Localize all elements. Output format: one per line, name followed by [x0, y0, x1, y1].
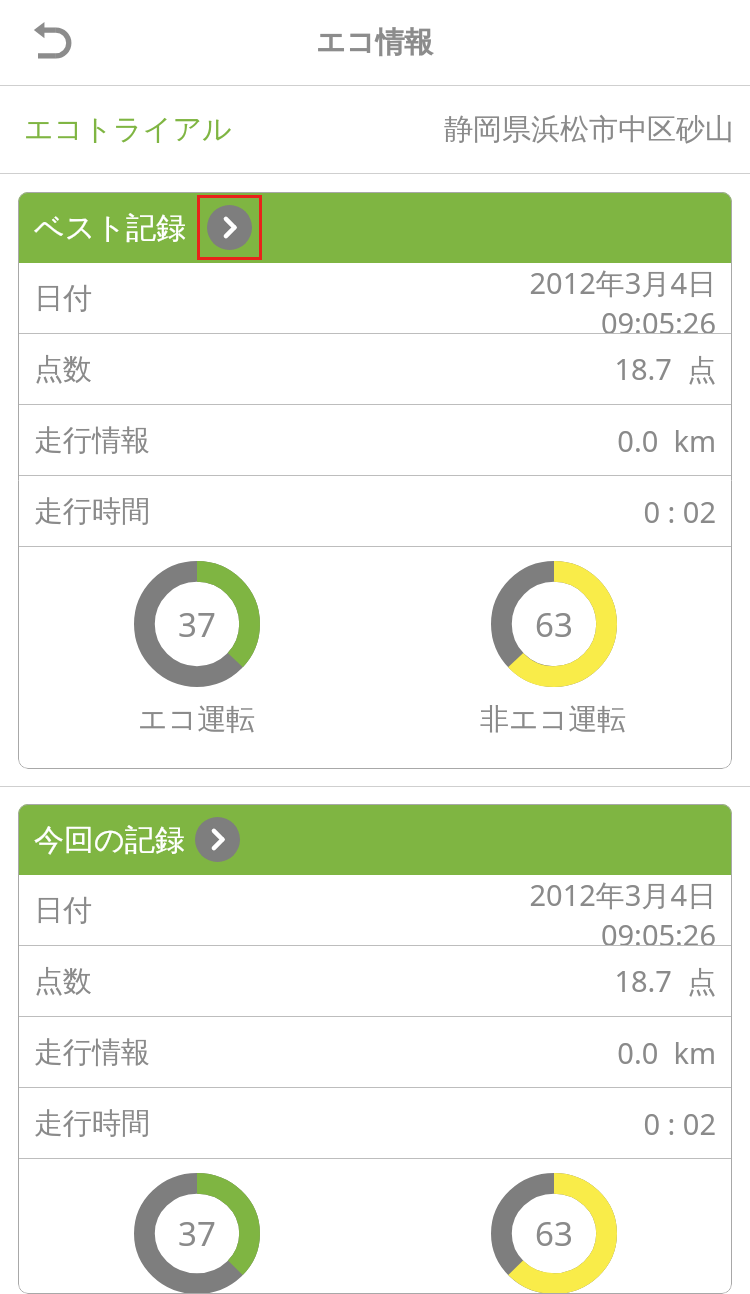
staticText: 走行時間: [34, 1105, 150, 1142]
staticText: 静岡県浜松市中区砂山: [444, 111, 734, 148]
staticText: エコ情報: [316, 24, 434, 61]
staticText: 09:05:26: [600, 915, 716, 945]
button[interactable]: Back: [22, 10, 88, 76]
button[interactable]: 日付: [18, 875, 732, 945]
button[interactable]: 点数: [18, 334, 732, 404]
staticText: 点数: [34, 351, 92, 388]
button[interactable]: 走行情報: [18, 1017, 732, 1087]
button[interactable]: 点数: [18, 946, 732, 1016]
staticText: エコ運転: [138, 701, 256, 738]
staticText: 0 : 02: [643, 1104, 716, 1143]
staticText: 0.0 km: [617, 1033, 716, 1072]
button[interactable]: 走行時間: [18, 476, 732, 546]
staticText: 走行情報: [34, 1034, 150, 1071]
staticText: 走行時間: [34, 493, 150, 530]
staticText: 非エコ運転: [480, 701, 627, 738]
staticText: 今回の記録: [34, 821, 185, 859]
staticText: 18.7 点: [614, 349, 716, 389]
staticText: 日付: [34, 892, 92, 929]
staticText: 37: [178, 1211, 216, 1256]
staticText: 2012年3月4日: [529, 263, 716, 303]
staticText: 18.7 点: [614, 961, 716, 1001]
staticText: ベスト記録: [34, 209, 187, 247]
button[interactable]: 走行時間: [18, 1088, 732, 1158]
staticText: 63: [535, 602, 573, 647]
button[interactable]: Details: [195, 817, 240, 862]
staticText: 2012年3月4日: [529, 875, 716, 915]
staticText: 63: [535, 1211, 573, 1256]
staticText: 点数: [34, 963, 92, 1000]
button[interactable]: 日付: [18, 263, 732, 333]
staticText: 日付: [34, 280, 92, 317]
staticText: 走行情報: [34, 422, 150, 459]
staticText: 0.0 km: [617, 421, 716, 460]
button[interactable]: 走行情報: [18, 405, 732, 475]
staticText: エコトライアル: [24, 111, 232, 148]
staticText: 0 : 02: [643, 492, 716, 531]
staticText: 37: [178, 602, 216, 647]
staticText: 09:05:26: [600, 303, 716, 333]
button[interactable]: Details: [207, 205, 252, 250]
